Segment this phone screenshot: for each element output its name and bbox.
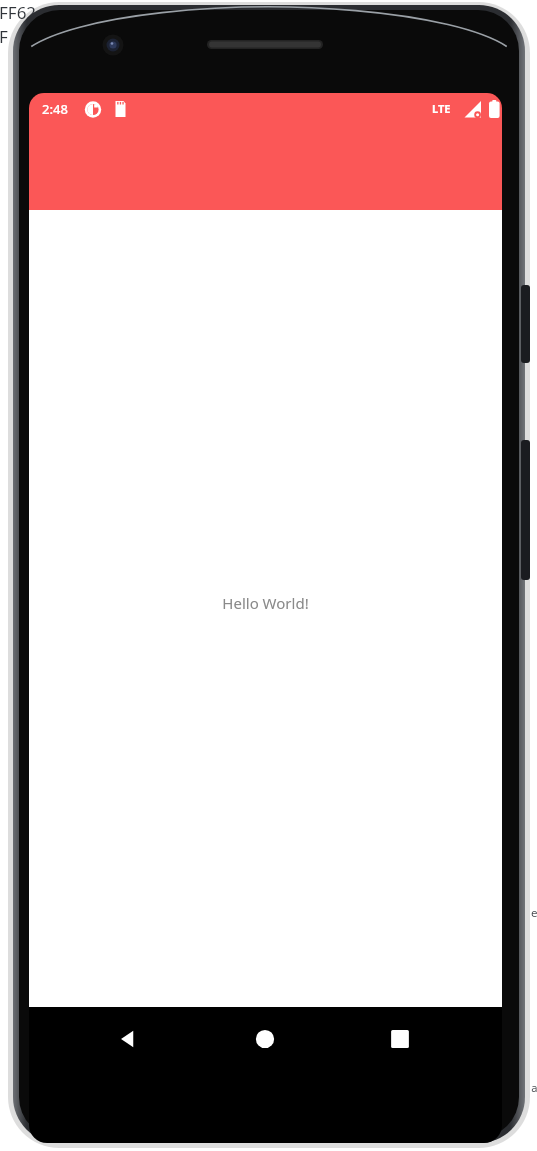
staticText: LTE — [432, 101, 451, 116]
staticText: FF62 — [0, 1, 37, 24]
button[interactable]: Home — [225, 1010, 305, 1068]
staticText: e — [531, 905, 537, 920]
staticText: 2:48 — [42, 100, 68, 118]
staticText: Hello World! — [222, 593, 309, 613]
button[interactable]: Back — [88, 1010, 168, 1068]
button[interactable]: Recent apps — [360, 1010, 440, 1068]
staticText: F — [0, 25, 8, 48]
staticText: a — [531, 1080, 537, 1095]
